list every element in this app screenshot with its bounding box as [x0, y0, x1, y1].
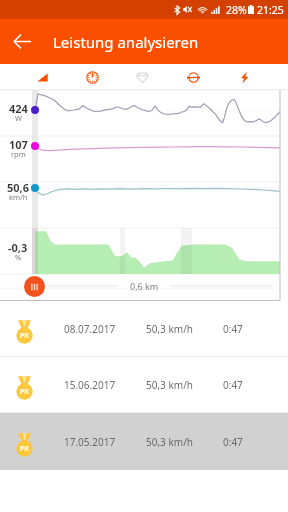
staticText: rpm — [11, 149, 26, 159]
staticText: PR — [20, 331, 29, 341]
staticText: 0:47 — [223, 378, 243, 392]
button[interactable]: PR — [0, 413, 288, 470]
staticText: 0,6 km — [130, 280, 159, 292]
staticText: 50,3 km/h — [146, 435, 194, 449]
staticText: 107 — [9, 137, 28, 152]
staticText: PR — [20, 387, 29, 397]
staticText: W — [15, 113, 22, 123]
button[interactable]: Back — [0, 19, 45, 64]
staticText: 08.07.2017 — [64, 322, 116, 336]
staticText: 21:25 — [257, 3, 284, 17]
staticText: 50,6 — [7, 180, 30, 195]
staticText: km/h — [9, 192, 28, 202]
button[interactable]: Elevation — [17, 64, 67, 90]
button[interactable]: Cadence — [168, 64, 219, 90]
button[interactable]: Power — [219, 64, 270, 90]
button[interactable]: Speed — [67, 64, 117, 90]
staticText: 28% — [226, 3, 247, 17]
staticText: 0:47 — [223, 322, 243, 336]
staticText: 424 — [9, 101, 28, 116]
staticText: PR — [20, 444, 29, 454]
button[interactable]: PR — [0, 357, 288, 412]
button[interactable]: Scrub position — [24, 276, 45, 297]
staticText: 15.06.2017 — [64, 378, 116, 392]
staticText: -0,3 — [8, 240, 28, 255]
staticText: 50,3 km/h — [146, 378, 194, 392]
staticText: 17.05.2017 — [64, 435, 116, 449]
staticText: 0:47 — [223, 435, 243, 449]
button[interactable]: Heart rate — [117, 64, 168, 90]
staticText: 50,3 km/h — [146, 322, 194, 336]
staticText: % — [15, 252, 22, 262]
staticText: Leistung analysieren — [53, 32, 199, 52]
button[interactable]: PR — [0, 301, 288, 356]
